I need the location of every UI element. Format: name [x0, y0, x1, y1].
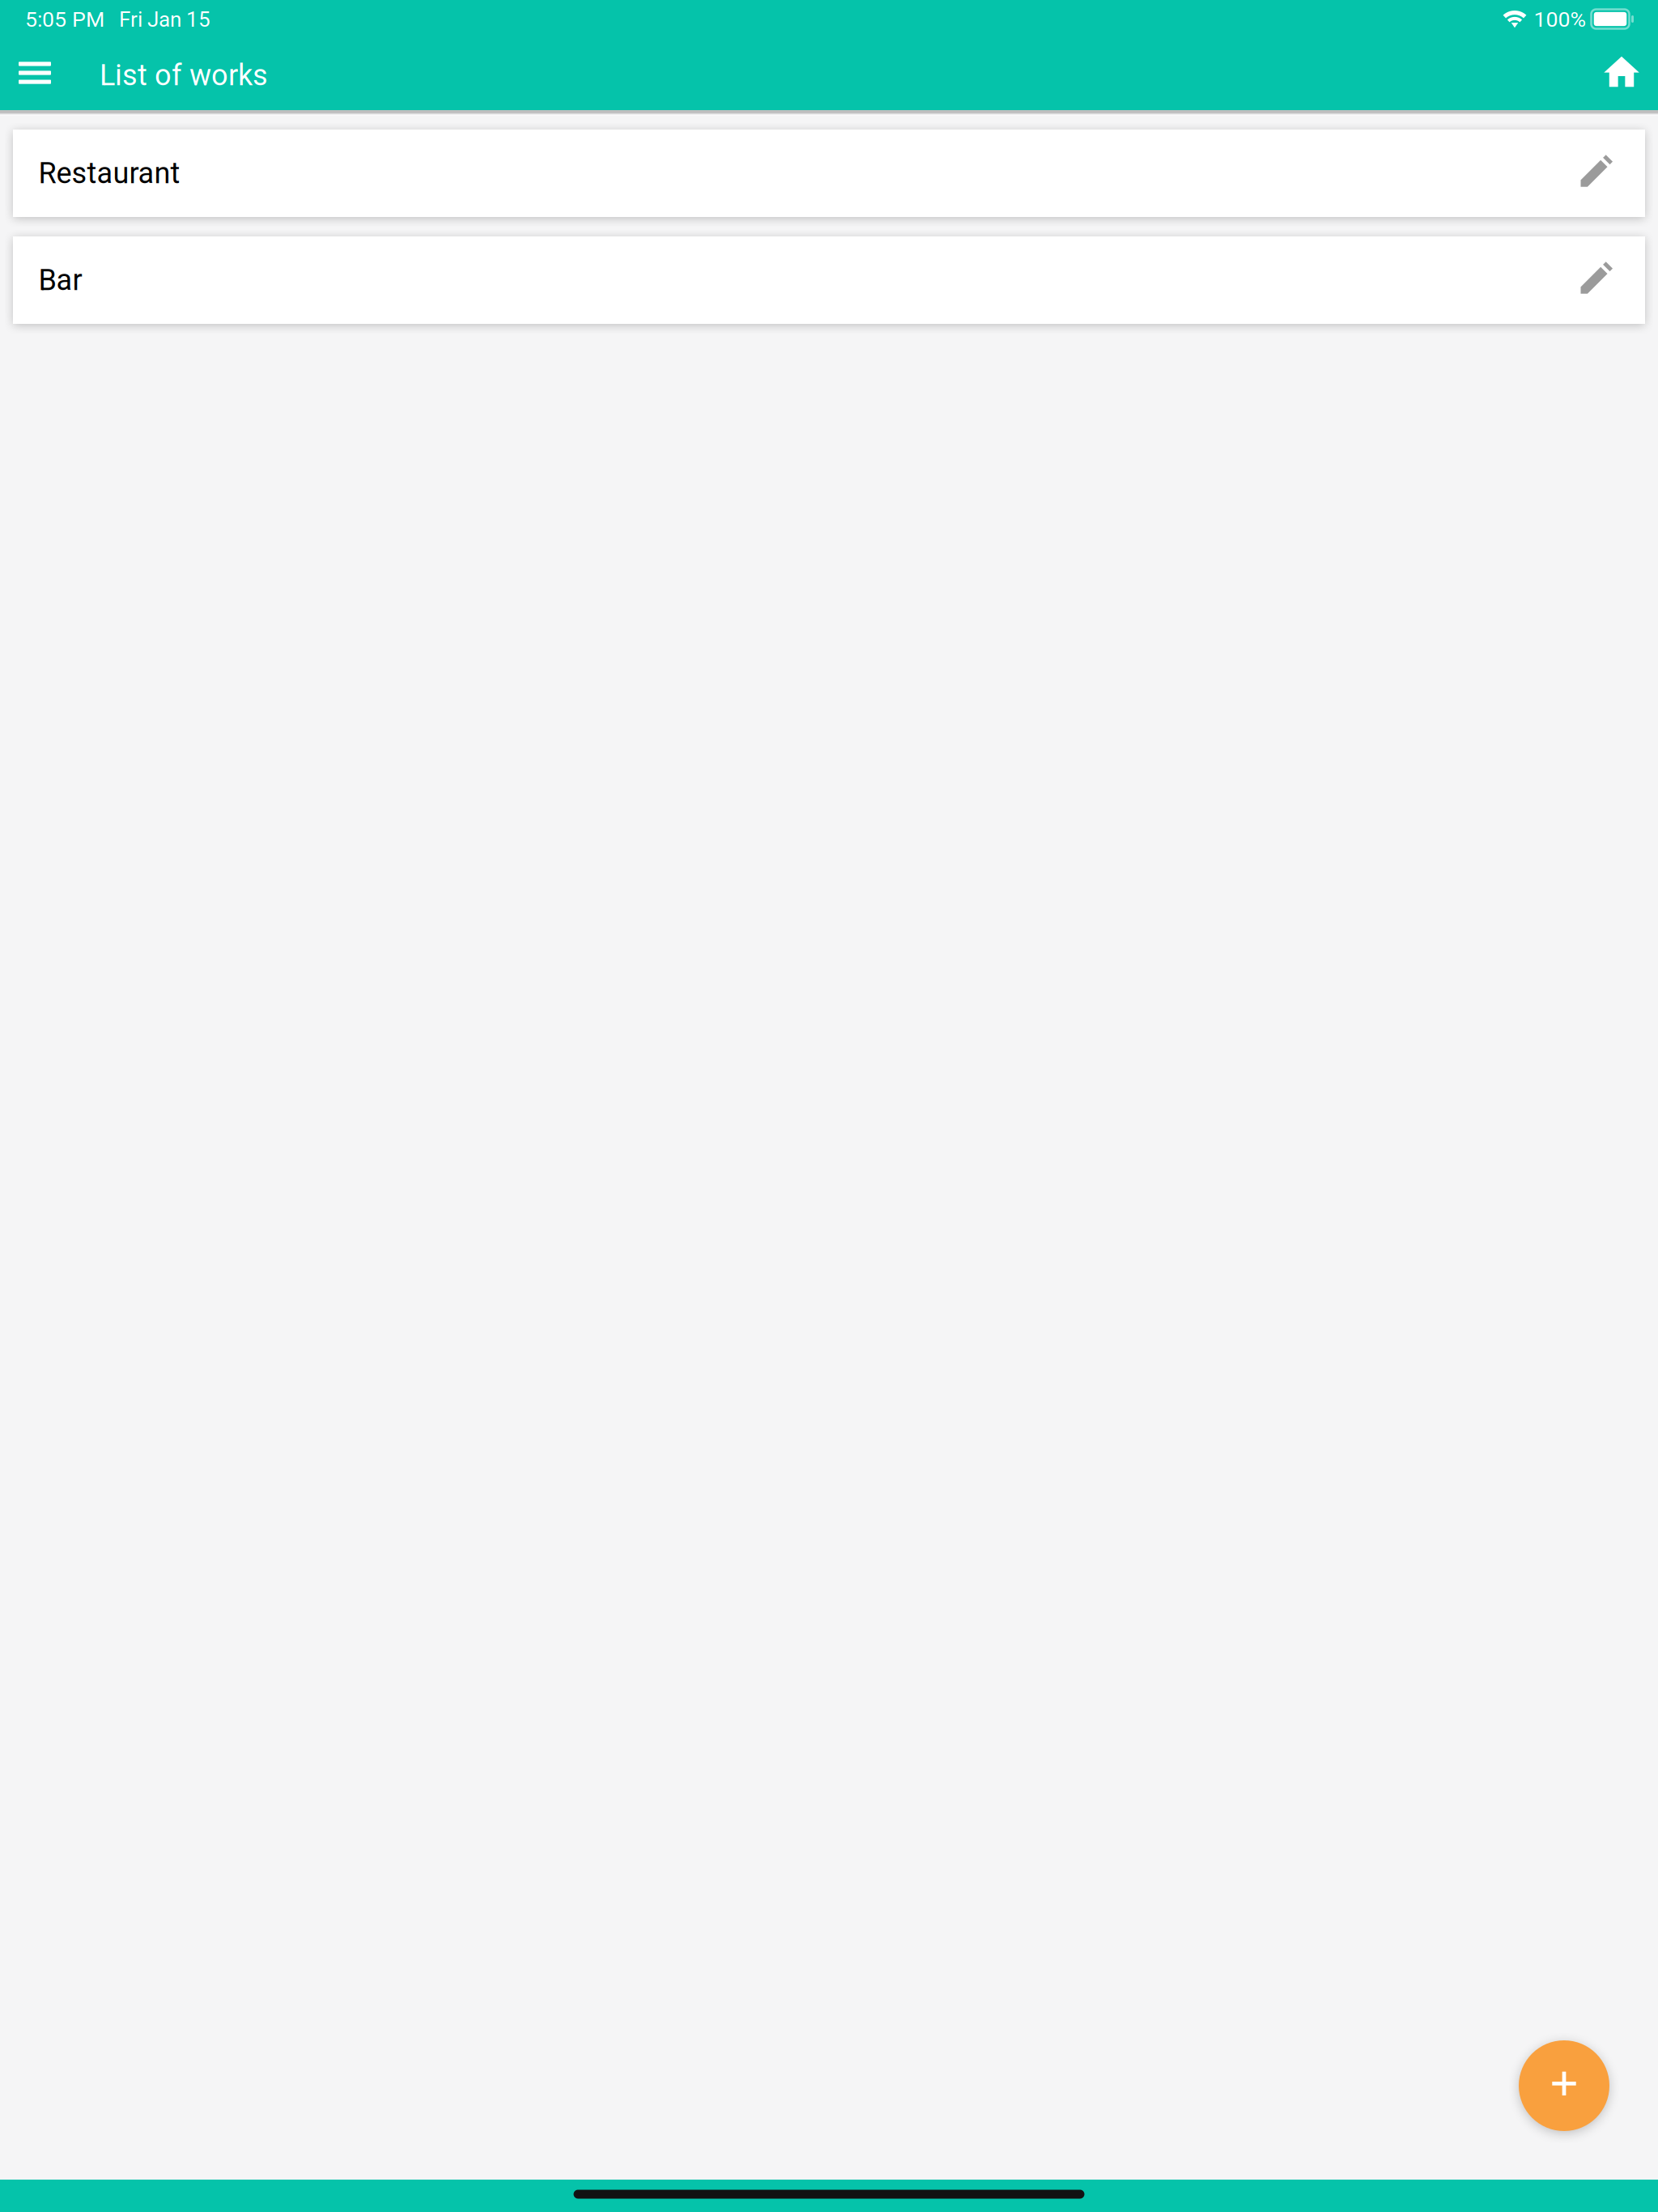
staticText: Restaurant [38, 156, 180, 190]
staticText: Fri Jan 15 [119, 7, 210, 32]
button[interactable]: Edit Restaurant [1581, 147, 1613, 200]
button[interactable]: Bar [13, 236, 1645, 324]
staticText: Bar [38, 263, 82, 297]
staticText: 5:05 PM [25, 7, 104, 32]
button[interactable]: Menu [0, 36, 70, 110]
button[interactable]: Restaurant [13, 130, 1645, 217]
staticText: List of works [100, 58, 268, 92]
button[interactable]: Edit Bar [1581, 253, 1613, 307]
staticText: 100% [1534, 7, 1586, 32]
button[interactable]: Home [1585, 36, 1658, 110]
button[interactable]: Add [1519, 2040, 1609, 2131]
